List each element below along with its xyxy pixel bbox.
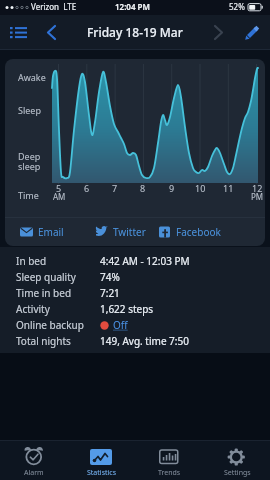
button[interactable]: Friday 18-19 Mar (87, 24, 183, 40)
button[interactable] (2, 18, 42, 48)
staticText: Online backup (16, 318, 84, 332)
button[interactable]: Email (20, 218, 75, 246)
staticText: 149, Avg. time 7:50 (100, 334, 189, 348)
button[interactable]: Alarm (0, 440, 68, 480)
staticText: 9 (169, 182, 175, 194)
staticText: Alarm (24, 468, 44, 478)
staticText: 11 (223, 182, 234, 194)
staticText: Facebook (176, 225, 221, 239)
staticText: Time (18, 189, 39, 201)
staticText: 1,622 steps (100, 302, 154, 316)
button[interactable]: Activity (0, 301, 270, 317)
button[interactable]: Twitter (95, 218, 151, 246)
staticText: 7 (112, 182, 118, 194)
staticText: Time in bed (16, 286, 72, 300)
staticText: Settings (224, 468, 251, 478)
staticText: 74% (100, 270, 120, 284)
button[interactable]: Statistics (68, 440, 136, 480)
button[interactable] (238, 18, 266, 48)
button[interactable] (42, 18, 66, 48)
staticText: 12:04 PM (115, 1, 150, 12)
button[interactable] (206, 18, 232, 48)
staticText: In bed (16, 254, 47, 268)
button[interactable]: In bed (0, 253, 270, 269)
staticText: Email (38, 225, 64, 239)
staticText: 12 (252, 182, 263, 194)
staticText: Off (113, 318, 128, 332)
staticText: AM (53, 191, 66, 202)
staticText: Sleep quality (16, 270, 76, 284)
button[interactable]: Facebook (158, 218, 228, 246)
button[interactable]: Trends (135, 440, 203, 480)
staticText: 5 (56, 182, 62, 194)
staticText: 4:42 AM - 12:03 PM (100, 254, 190, 268)
staticText: Sleep (18, 104, 41, 116)
staticText: Verizon LTE (31, 1, 77, 12)
staticText: Deep sleep (18, 150, 41, 172)
staticText: 52% (229, 1, 245, 12)
staticText: Twitter (113, 225, 146, 239)
staticText: 7:21 (100, 286, 120, 300)
staticText: Awake (18, 71, 46, 83)
button[interactable]: Time in bed (0, 285, 270, 301)
button[interactable]: Total nights (0, 333, 270, 349)
staticText: PM (251, 191, 264, 202)
staticText: Activity (16, 302, 50, 316)
staticText: 10 (195, 182, 206, 194)
button[interactable]: Settings (203, 440, 270, 480)
staticText: 6 (84, 182, 90, 194)
staticText: Total nights (16, 334, 71, 348)
staticText: Statistics (87, 468, 117, 478)
button[interactable]: Online backup (0, 317, 270, 333)
button[interactable]: Sleep quality (0, 269, 270, 285)
staticText: 8 (140, 182, 146, 194)
staticText: Trends (158, 468, 181, 478)
